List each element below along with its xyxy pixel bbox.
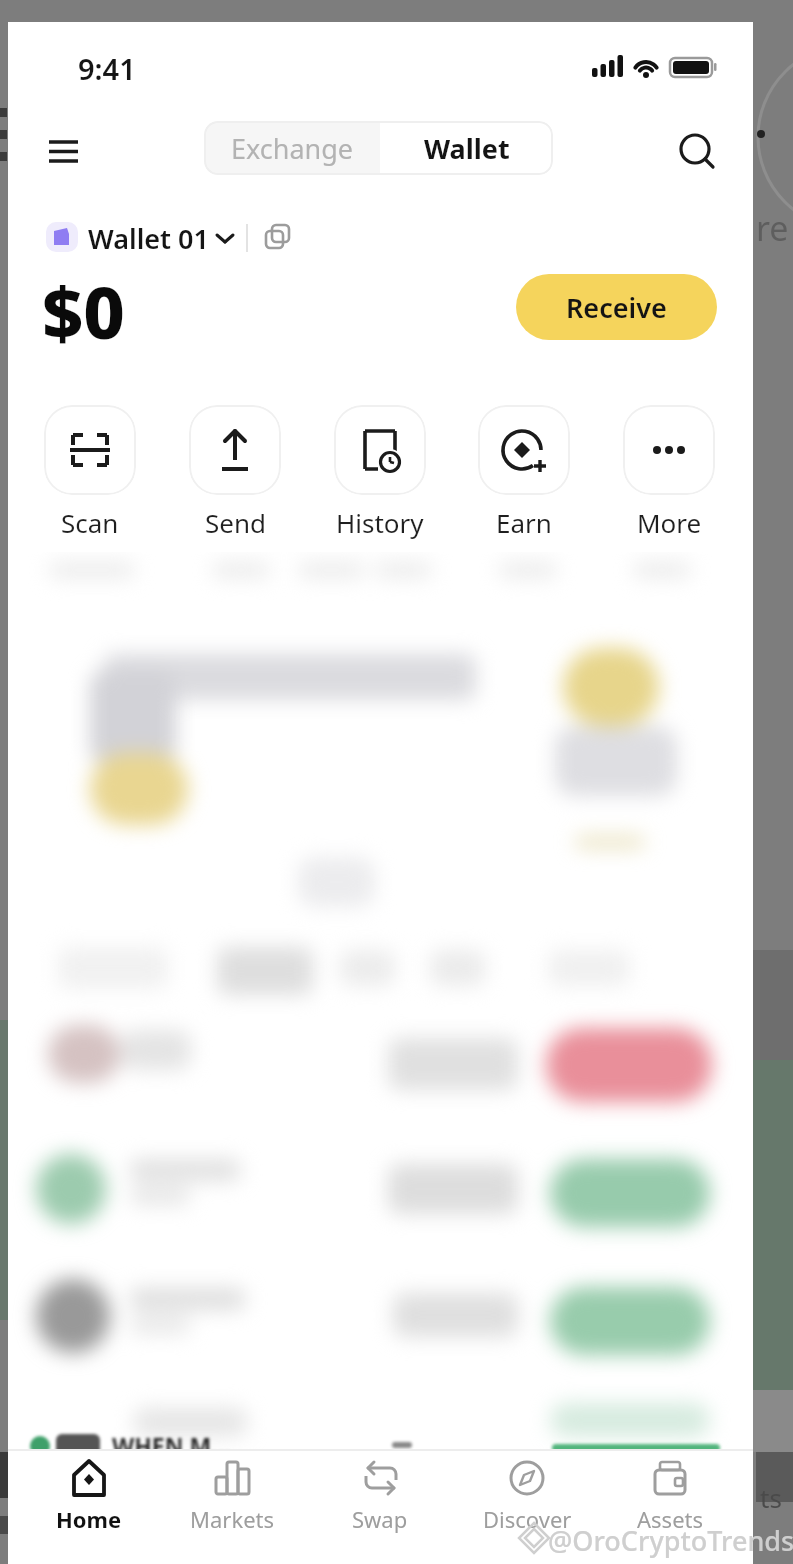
staticText: $0: [42, 262, 125, 360]
staticText: Send: [205, 505, 266, 539]
button[interactable]: Wallet 01: [46, 220, 235, 254]
staticText: Receive: [566, 289, 667, 326]
staticText: More: [637, 505, 702, 539]
button[interactable]: [42, 130, 86, 174]
staticText: Wallet: [424, 130, 510, 167]
staticText: Scan: [61, 505, 119, 539]
button[interactable]: [623, 405, 715, 495]
staticText: WHEN M...: [112, 1430, 231, 1458]
button[interactable]: [261, 220, 301, 258]
button[interactable]: Wallet: [380, 121, 553, 175]
button[interactable]: Exchange: [204, 121, 380, 175]
button[interactable]: Home: [34, 1455, 144, 1557]
button[interactable]: Receive: [516, 274, 717, 340]
staticText: Home: [56, 1504, 122, 1534]
staticText: re: [756, 205, 789, 251]
staticText: ts: [760, 1480, 782, 1515]
staticText: 9:41: [78, 49, 136, 88]
button[interactable]: Assets: [615, 1455, 725, 1557]
staticText: Swap: [352, 1504, 408, 1534]
button[interactable]: [189, 405, 281, 495]
button[interactable]: Discover: [472, 1455, 582, 1557]
button[interactable]: [478, 405, 570, 495]
staticText: @OroCryptoTrends: [548, 1522, 793, 1559]
button[interactable]: [334, 405, 426, 495]
button[interactable]: [676, 129, 720, 173]
staticText: Wallet 01: [88, 220, 209, 254]
staticText: History: [336, 505, 424, 539]
staticText: Markets: [190, 1504, 275, 1534]
button[interactable]: Swap: [325, 1455, 435, 1557]
button[interactable]: [44, 405, 136, 495]
staticText: Discover: [483, 1504, 572, 1534]
button[interactable]: Markets: [177, 1455, 287, 1557]
staticText: Exchange: [231, 130, 354, 167]
staticText: Assets: [637, 1504, 704, 1534]
staticText: Earn: [496, 505, 552, 539]
